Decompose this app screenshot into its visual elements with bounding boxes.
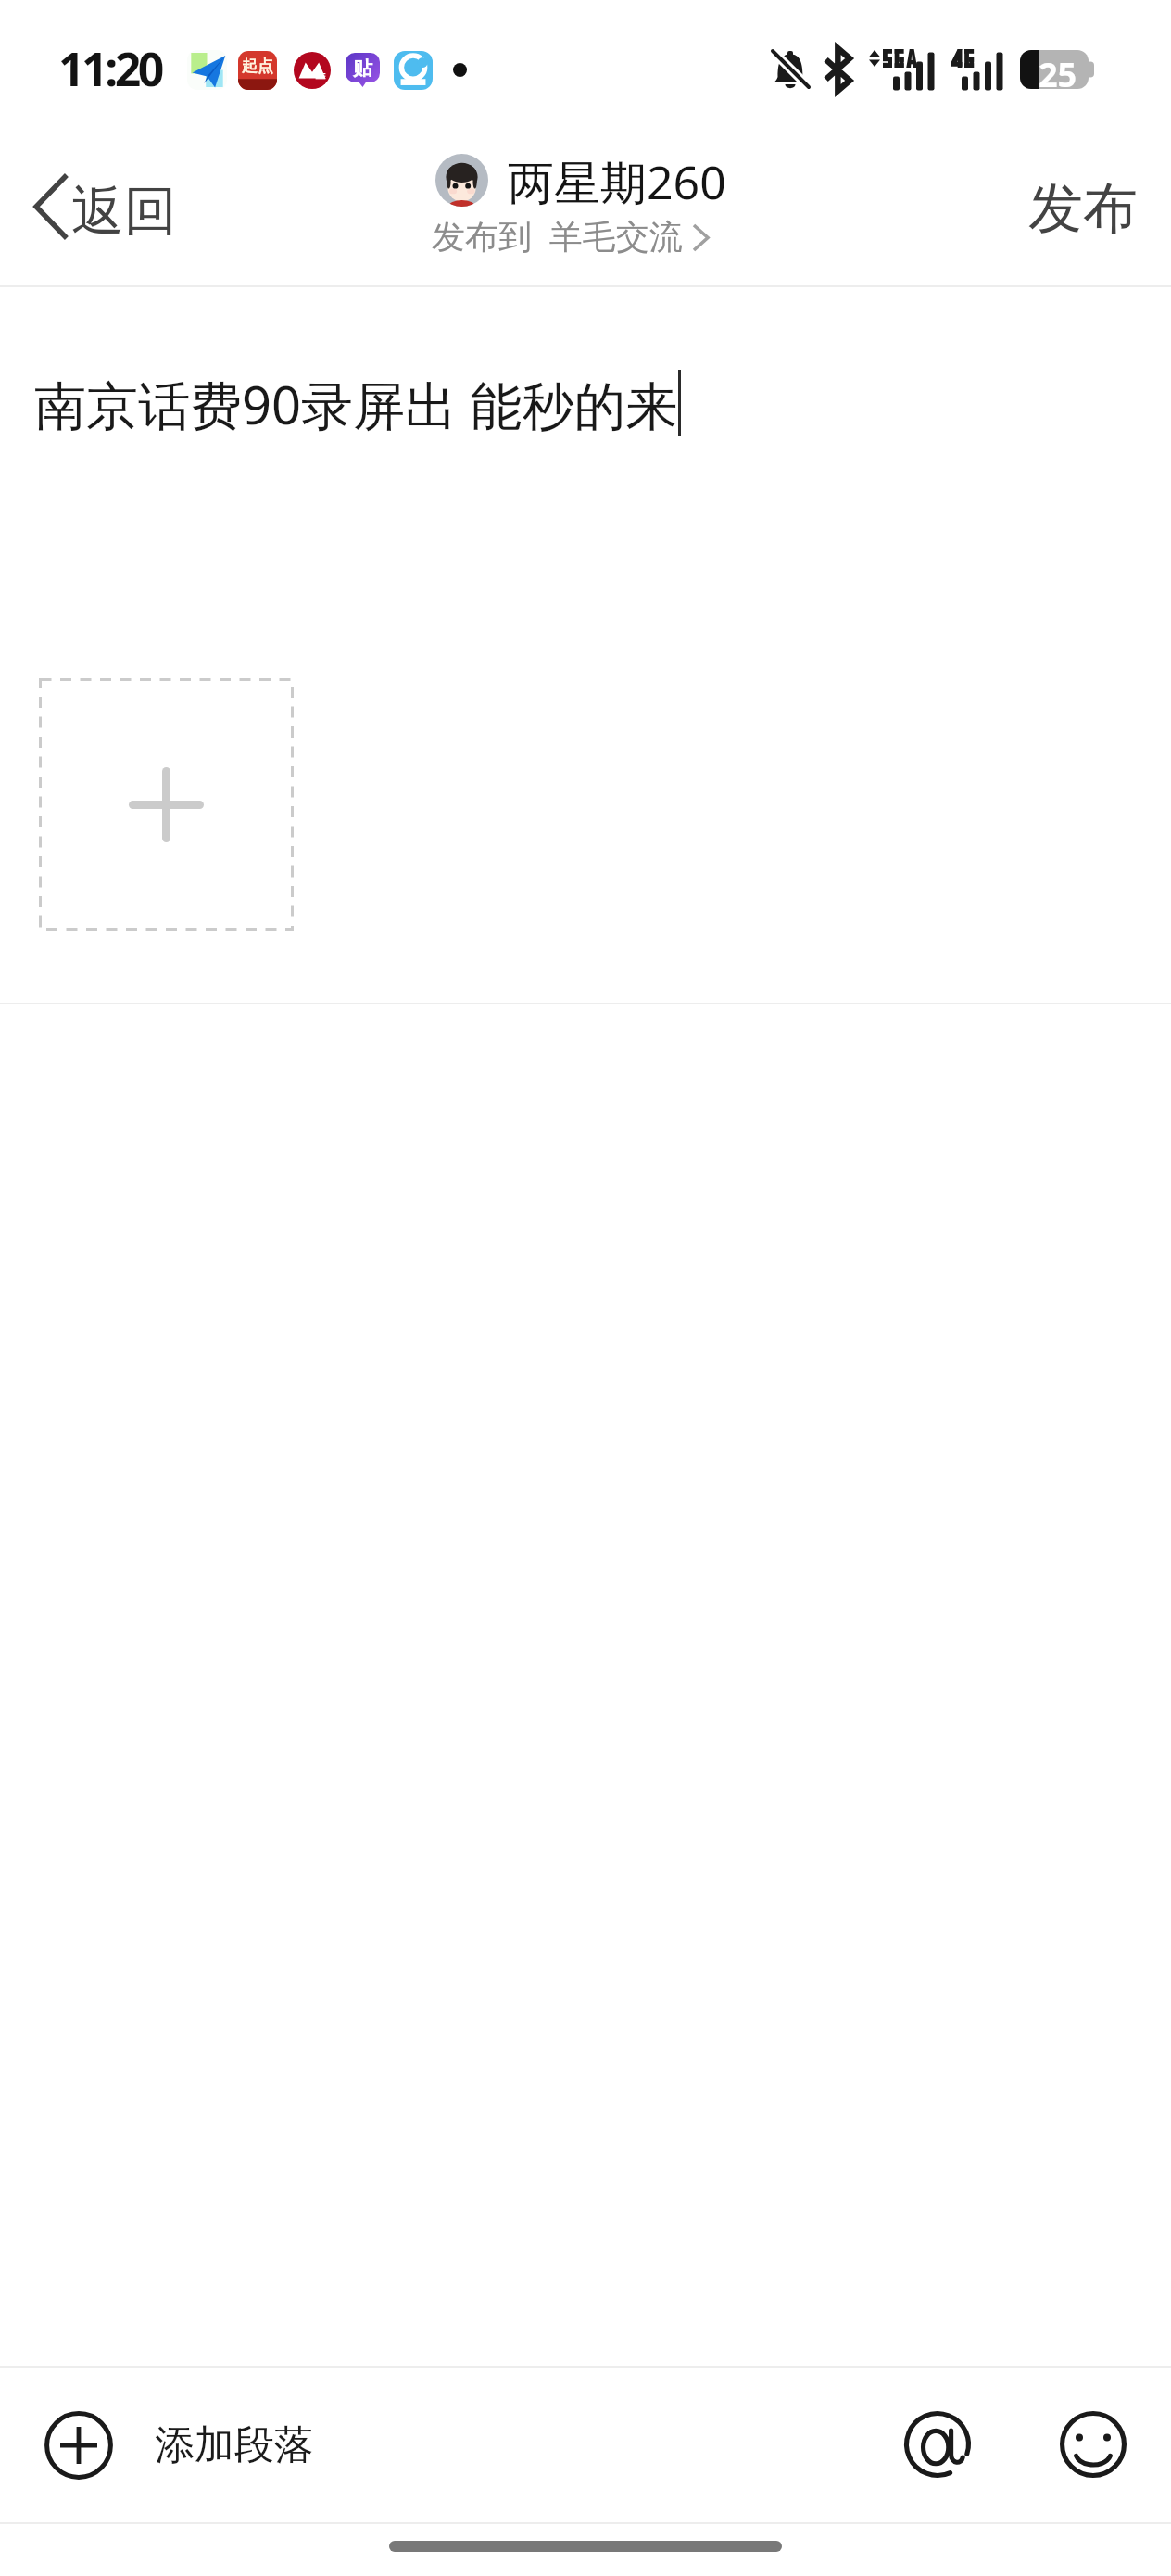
staticText: 11:20 [58,37,161,100]
staticText: 返回 [71,178,177,245]
button[interactable]: Insert emoji [1060,2411,1127,2478]
staticText: 贴 [353,57,372,81]
button[interactable]: 发布 [989,146,1171,265]
staticText: 南京话费90录屏出 能秒的来 [34,369,678,439]
button[interactable]: 两星期260 [419,146,726,265]
button[interactable]: 返回 [13,146,189,265]
button[interactable]: 添加段落 [0,2368,351,2522]
button[interactable]: Add image [39,678,294,931]
staticText: 起点 [242,57,273,76]
staticText: 25 [1039,52,1077,95]
staticText: 发布 [1028,174,1138,243]
button[interactable]: Mention someone [904,2411,971,2478]
staticText: 添加段落 [155,2420,314,2470]
staticText: 两星期260 [508,150,726,213]
button[interactable]: Post body text field [0,287,1171,676]
staticText: 发布到 羊毛交流 [432,213,683,259]
